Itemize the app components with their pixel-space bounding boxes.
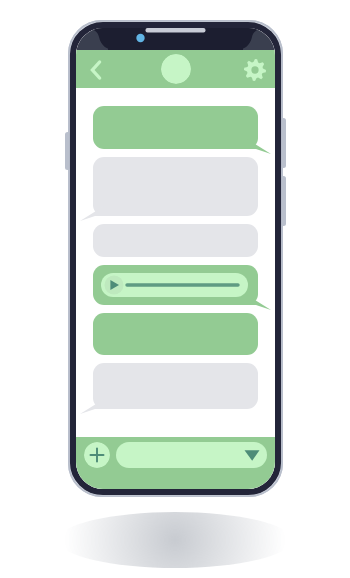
button[interactable]: Contact avatar [161, 54, 191, 84]
button[interactable]: Send [239, 442, 265, 468]
button[interactable]: Message input [116, 442, 267, 468]
button[interactable]: Back [80, 54, 112, 86]
button[interactable]: Settings [239, 54, 271, 86]
button[interactable]: Add attachment [84, 442, 110, 468]
